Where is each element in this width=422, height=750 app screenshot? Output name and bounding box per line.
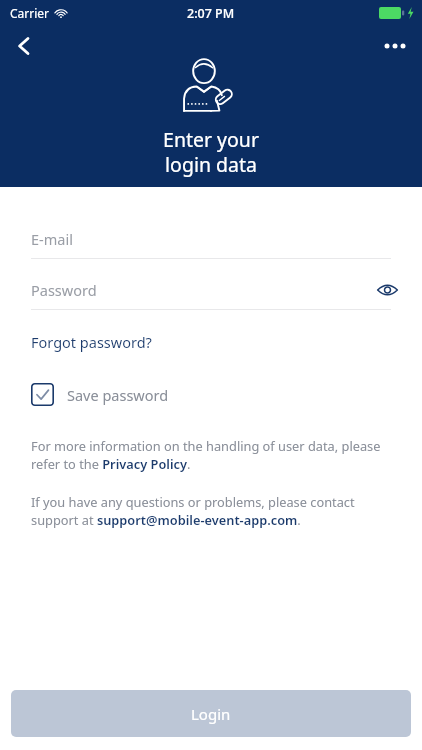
staticText: Carrier — [10, 5, 50, 21]
staticText: Login — [191, 704, 231, 724]
staticText: If you have any questions or problems, p… — [31, 493, 391, 529]
staticText: 2:07 PM — [187, 5, 235, 22]
staticText: Save password — [67, 385, 169, 405]
button[interactable]: Show password — [370, 273, 404, 307]
button[interactable]: Forgot password? — [17, 324, 166, 360]
staticText: E-mail — [31, 229, 73, 249]
button[interactable]: E-mail — [0, 220, 422, 258]
button[interactable]: Password — [0, 271, 422, 309]
button[interactable]: Save password — [0, 379, 422, 410]
button[interactable]: More options — [375, 26, 415, 66]
staticText: For more information on the handling of … — [31, 437, 391, 473]
staticText: Password — [31, 280, 97, 300]
staticText: Forgot password? — [31, 332, 152, 352]
button[interactable]: Login — [11, 690, 411, 737]
staticText: Enter your login data — [163, 126, 259, 177]
button[interactable]: Back — [4, 26, 44, 66]
